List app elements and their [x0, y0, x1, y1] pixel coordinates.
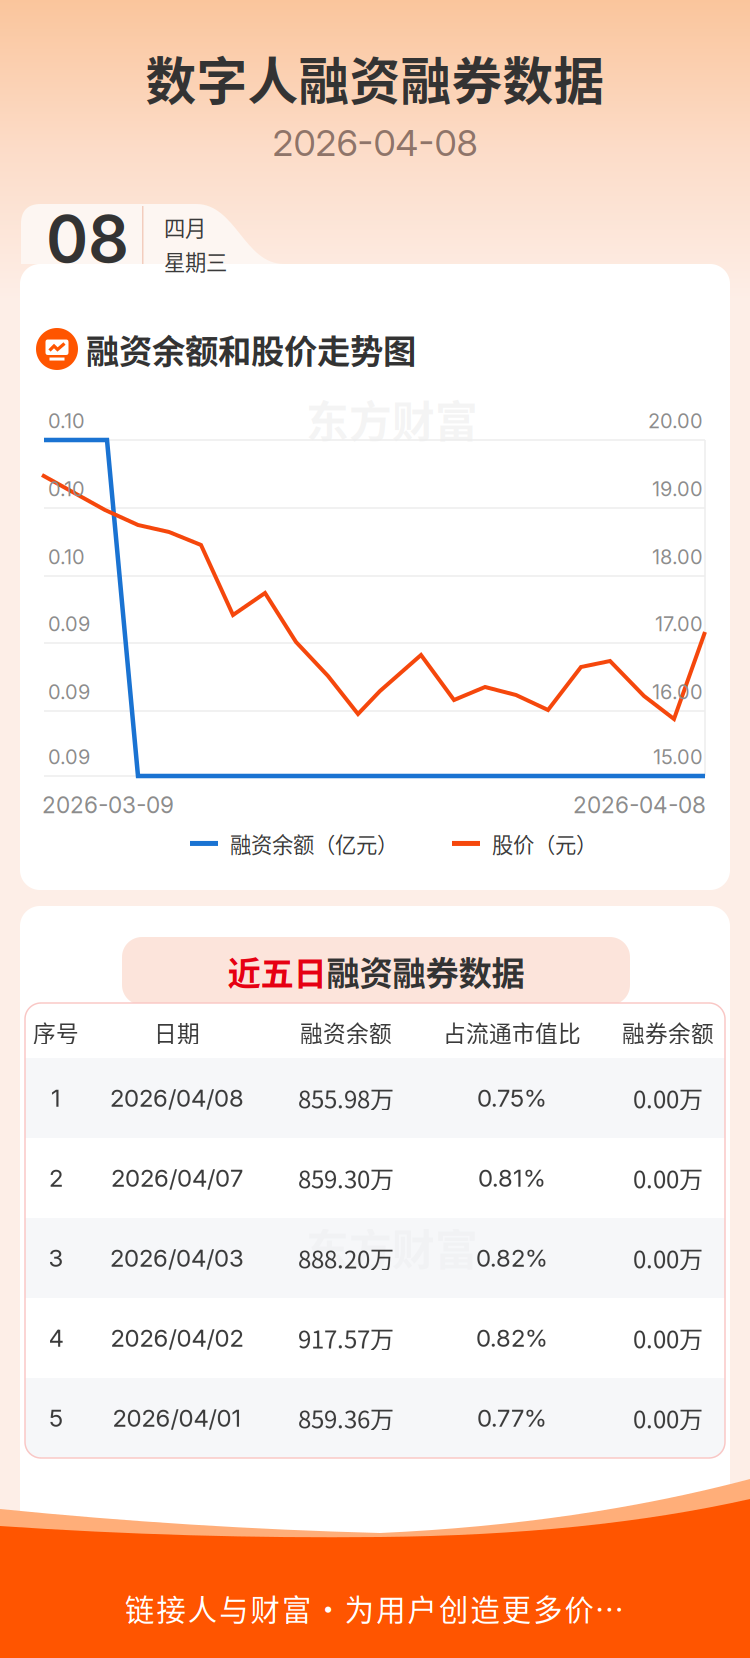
- staticText: 3: [48, 1243, 63, 1272]
- staticText: 0.82%: [476, 1243, 548, 1272]
- staticText: 融券余额: [622, 1016, 714, 1048]
- staticText: 888.20万: [298, 1241, 394, 1275]
- staticText: 0.00万: [633, 1081, 703, 1115]
- staticText: 2026-04-08: [573, 791, 706, 819]
- staticText: 0.09: [48, 612, 90, 636]
- staticText: 融资融券数据: [326, 947, 524, 995]
- staticText: 融资余额: [300, 1016, 392, 1048]
- staticText: 融资余额和股价走势图: [86, 325, 416, 373]
- staticText: 2026/04/02: [110, 1323, 243, 1352]
- staticText: 0.75%: [477, 1083, 547, 1112]
- staticText: 0.81%: [478, 1163, 546, 1192]
- staticText: 股价（元）: [492, 828, 597, 859]
- staticText: 17.00: [655, 612, 703, 636]
- staticText: 2026-03-09: [42, 791, 174, 819]
- staticText: 0.00万: [633, 1321, 703, 1355]
- staticText: 0.00万: [633, 1241, 703, 1275]
- staticText: 16.00: [652, 680, 703, 704]
- staticText: 855.98万: [298, 1081, 394, 1115]
- staticText: 2026/04/08: [110, 1083, 244, 1112]
- staticText: 0.10: [48, 545, 85, 569]
- staticText: 东方财富: [306, 388, 478, 450]
- staticText: 0.00万: [633, 1401, 703, 1435]
- staticText: 859.36万: [298, 1401, 394, 1435]
- staticText: 星期三: [164, 246, 227, 276]
- staticText: 0.00万: [633, 1161, 703, 1195]
- staticText: 2026/04/01: [112, 1403, 241, 1432]
- staticText: 序号: [33, 1016, 79, 1048]
- staticText: 20.00: [648, 409, 703, 433]
- staticText: 0.09: [48, 745, 90, 769]
- staticText: 15.00: [653, 745, 703, 769]
- staticText: 近五日: [227, 947, 326, 995]
- staticText: 2026/04/03: [110, 1243, 244, 1272]
- staticText: 数字人融资融券数据: [145, 41, 604, 115]
- staticText: 0.10: [48, 409, 85, 433]
- staticText: 占流通市值比: [443, 1016, 581, 1048]
- staticText: 859.30万: [298, 1161, 394, 1195]
- staticText: 0.77%: [477, 1403, 547, 1432]
- staticText: 5: [49, 1403, 63, 1432]
- staticText: 1: [51, 1083, 61, 1112]
- staticText: 4: [48, 1323, 63, 1352]
- staticText: 日期: [154, 1016, 200, 1048]
- staticText: 2026-04-08: [272, 121, 477, 165]
- staticText: 0.10: [48, 477, 85, 501]
- staticText: 融资余额（亿元）: [230, 828, 398, 859]
- staticText: 19.00: [652, 477, 703, 501]
- staticText: 2026/04/07: [111, 1163, 243, 1192]
- staticText: 0.82%: [476, 1323, 548, 1352]
- staticText: 2: [49, 1163, 63, 1192]
- staticText: 18.00: [652, 545, 703, 569]
- staticText: 917.57万: [298, 1321, 394, 1355]
- staticText: 东方财富: [306, 1216, 478, 1278]
- staticText: 0.09: [48, 680, 90, 704]
- staticText: 四月: [164, 212, 206, 242]
- staticText: 08: [46, 200, 129, 278]
- staticText: 链接人与财富·为用户创造更多价值: [125, 1587, 625, 1629]
